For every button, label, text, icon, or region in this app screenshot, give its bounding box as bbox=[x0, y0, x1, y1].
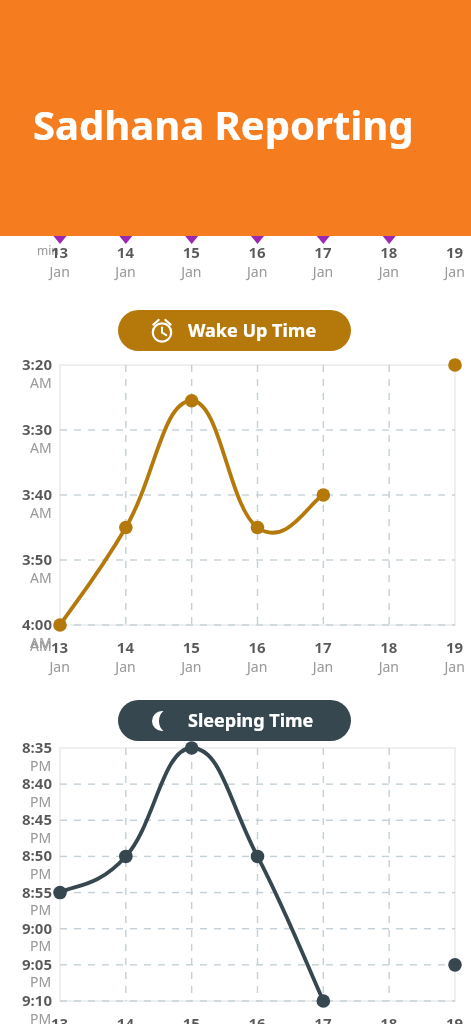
staticText: Sleeping Time bbox=[188, 708, 314, 733]
button[interactable]: Sleeping Time bbox=[118, 700, 351, 741]
button[interactable]: Wake Up Time bbox=[118, 310, 351, 351]
staticText: Wake Up Time bbox=[188, 318, 317, 343]
